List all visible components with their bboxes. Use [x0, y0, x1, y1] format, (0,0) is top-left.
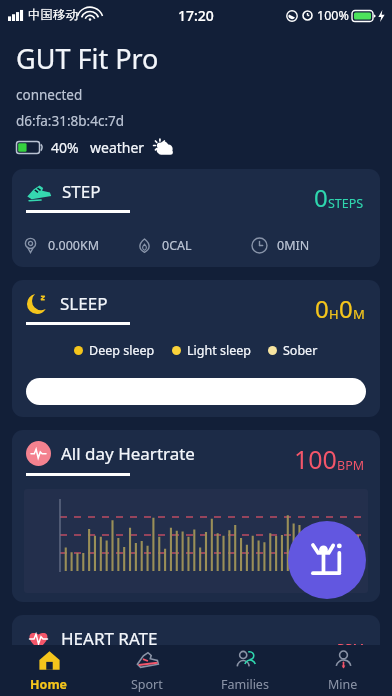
staticText: 0MIN: [277, 237, 310, 254]
staticText: d6:fa:31:8b:4c:7d: [16, 112, 125, 130]
staticText: 0: [339, 292, 353, 325]
staticText: Families: [221, 676, 269, 693]
button[interactable]: All day Heartrate: [12, 430, 380, 602]
staticText: connected: [16, 86, 83, 104]
staticText: BPM: [337, 640, 365, 657]
staticText: Mine: [328, 676, 358, 693]
button[interactable]: Start workout: [288, 521, 366, 599]
staticText: 100%: [317, 7, 349, 24]
staticText: 0.000KM: [48, 237, 100, 254]
staticText: Light sleep: [187, 342, 251, 359]
staticText: M: [353, 305, 365, 323]
button[interactable]: Sport: [98, 645, 196, 696]
button[interactable]: Families: [196, 645, 294, 696]
staticText: All day Heartrate: [61, 442, 195, 465]
staticText: 0: [315, 292, 329, 325]
staticText: 0CAL: [162, 237, 192, 254]
button[interactable]: Home: [0, 645, 98, 696]
staticText: --: [322, 629, 337, 659]
staticText: 中国移动: [28, 7, 78, 23]
staticText: 0: [314, 181, 328, 214]
staticText: Sober: [283, 342, 318, 359]
button[interactable]: STEP: [12, 169, 380, 267]
staticText: HEART RATE: [61, 627, 158, 650]
staticText: 40%: [51, 138, 79, 157]
staticText: BPM: [337, 457, 365, 474]
staticText: GUT Fit Pro: [16, 40, 159, 77]
staticText: STEP: [62, 180, 101, 203]
staticText: SLEEP: [60, 292, 108, 315]
staticText: 100: [294, 442, 337, 476]
staticText: 17:20: [178, 6, 214, 25]
staticText: Home: [30, 676, 68, 693]
button[interactable]: Mine: [294, 645, 392, 696]
staticText: H: [329, 305, 339, 323]
staticText: STEPS: [328, 195, 364, 212]
staticText: Deep sleep: [89, 342, 155, 359]
staticText: weather: [90, 138, 145, 157]
button[interactable]: SLEEP: [12, 280, 380, 417]
button[interactable]: HEART RATE: [12, 615, 380, 675]
staticText: Sport: [131, 676, 163, 693]
